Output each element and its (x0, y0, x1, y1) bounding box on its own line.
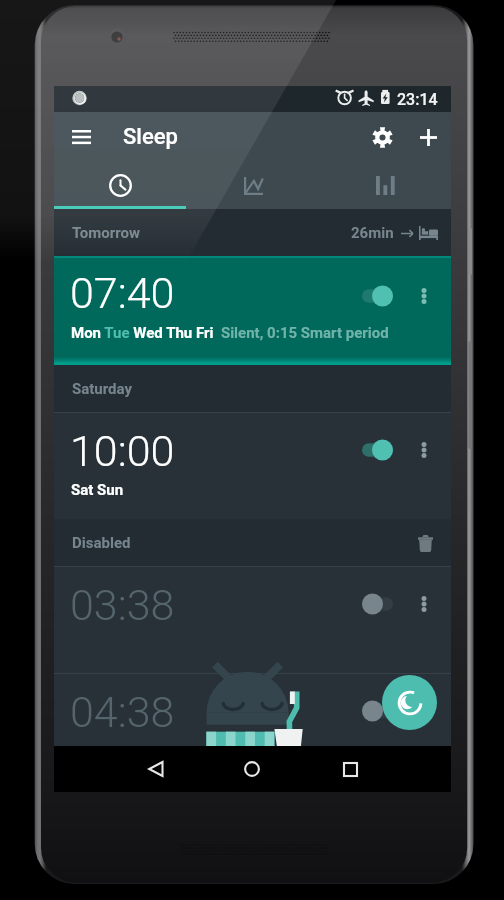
staticText: Mon Tue Wed Thu Fri Silent, 0:15 Smart p… (71, 324, 389, 342)
button[interactable]: Recent apps (327, 746, 373, 792)
button[interactable]: More options (409, 275, 439, 317)
staticText: Sleep (123, 124, 178, 150)
button[interactable]: 03:38 (54, 566, 451, 673)
button[interactable]: Navigation menu (63, 119, 99, 155)
button[interactable]: Disable alarm (355, 275, 399, 317)
staticText: 23:14 (397, 90, 438, 109)
button[interactable]: Enable alarm (355, 690, 399, 732)
button[interactable]: Home (229, 746, 275, 792)
button[interactable]: 04:38 (54, 673, 451, 780)
button[interactable]: 26min (351, 224, 438, 242)
staticText: Sat Sun (71, 481, 124, 499)
button[interactable]: 10:00 (54, 412, 451, 519)
button[interactable]: Back (132, 746, 178, 792)
staticText: Saturday (72, 380, 132, 398)
staticText: 04:38 (70, 687, 175, 737)
button[interactable]: Disable alarm (355, 429, 399, 471)
staticText: Disabled (72, 534, 131, 552)
button[interactable]: Statistics tab (319, 162, 451, 209)
staticText: Tomorrow (72, 224, 140, 242)
button[interactable]: More options (409, 429, 439, 471)
button[interactable]: Delete disabled alarms (411, 529, 439, 557)
button[interactable]: Alarms tab (54, 162, 187, 209)
staticText: 26min (351, 224, 394, 242)
button[interactable]: Enable alarm (355, 583, 399, 625)
button[interactable]: Settings (364, 119, 400, 155)
staticText: 07:40 (70, 268, 175, 318)
button[interactable]: Sleep graphs tab (187, 162, 319, 209)
button[interactable]: More options (409, 583, 439, 625)
staticText: 03:38 (70, 580, 175, 630)
button[interactable]: Start sleep tracking (382, 675, 437, 730)
button[interactable]: 07:40 (54, 256, 451, 365)
staticText: 10:00 (70, 426, 175, 476)
button[interactable]: Add alarm (410, 119, 446, 155)
